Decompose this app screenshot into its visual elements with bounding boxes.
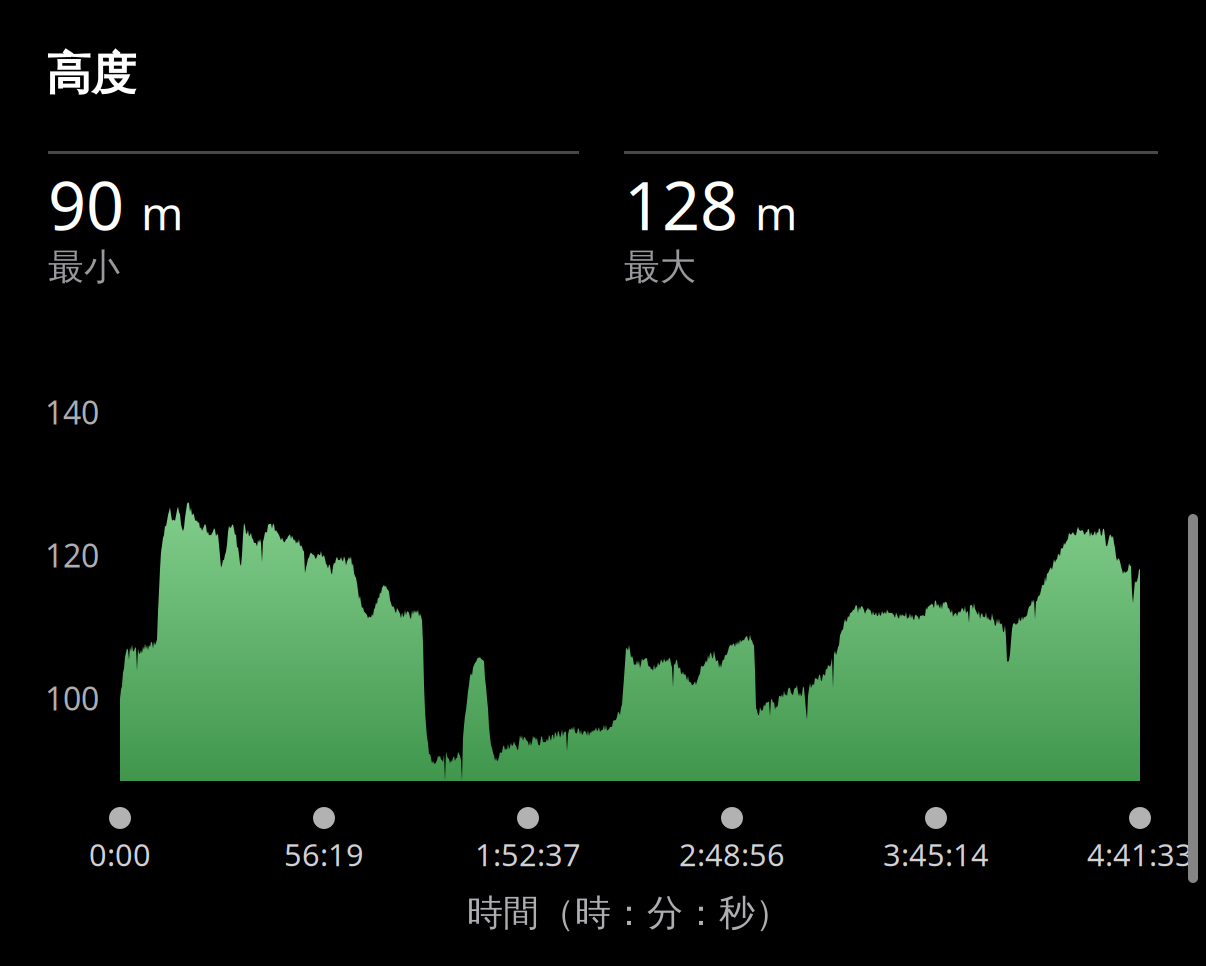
staticText: 140 [45,391,99,433]
button[interactable]: 0:00 [30,807,210,887]
staticText: 1:52:37 [475,834,581,875]
staticText: 56:19 [284,834,364,875]
staticText: 高度 [46,46,136,102]
button[interactable]: 1:52:37 [438,807,618,887]
staticText: 100 [45,677,99,719]
staticText: 120 [45,534,99,576]
button[interactable]: 2:48:56 [642,807,822,887]
staticText: 0:00 [89,834,151,875]
button[interactable]: 4:41:33 [1050,807,1206,887]
staticText: 3:45:14 [883,834,989,875]
staticText: m [755,182,797,243]
staticText: 90 [48,160,124,248]
button[interactable]: 3:45:14 [846,807,1026,887]
staticText: 4:41:33 [1087,834,1193,875]
button[interactable]: 90 [48,151,579,351]
staticText: 128 [624,160,738,248]
staticText: 最小 [48,245,120,289]
button[interactable]: 128 [624,151,1158,351]
button[interactable]: 56:19 [234,807,414,887]
staticText: m [141,182,183,243]
staticText: 時間（時：分：秒） [467,891,791,935]
staticText: 最大 [624,245,696,289]
staticText: 2:48:56 [679,834,785,875]
